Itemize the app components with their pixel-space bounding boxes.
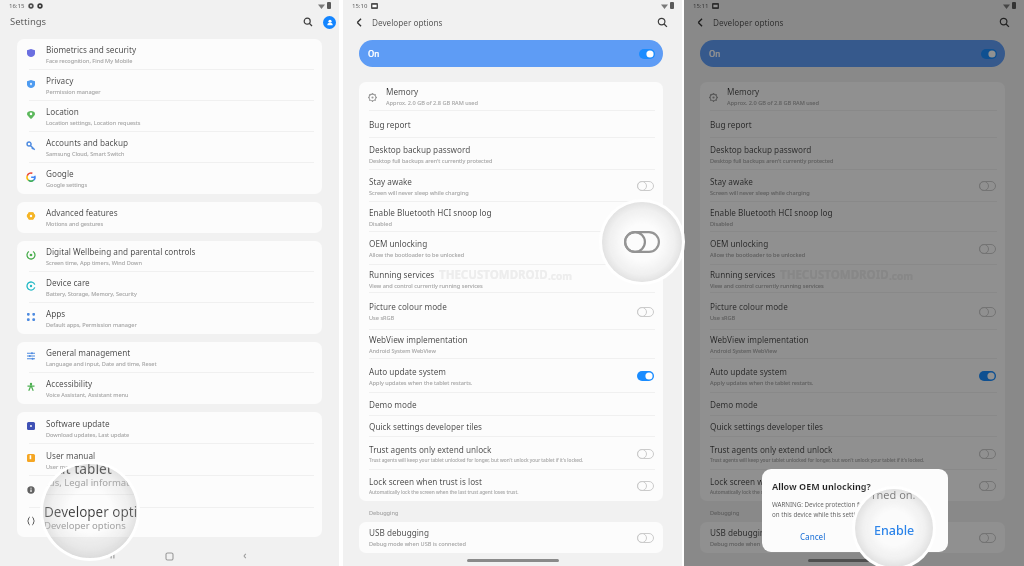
staticText: Desktop full backups aren't currently pr… [710,157,834,165]
staticText: OEM unlocking [369,238,428,249]
button[interactable]: Search [301,15,315,29]
button[interactable]: Lock screen when trust is lost [359,470,663,501]
button[interactable]: Bug report [359,111,663,138]
button[interactable]: On [359,40,663,67]
staticText: Apply updates when the tablet restarts. [710,379,814,387]
button[interactable]: Toggle off [979,307,996,317]
button[interactable]: On [700,40,1005,67]
staticText: Android System WebView [710,347,777,355]
button[interactable]: Running services [359,265,663,293]
button[interactable]: Bug report [700,111,1005,138]
button[interactable]: Demo mode [359,393,663,416]
button[interactable]: Picture colour mode [359,293,663,330]
button[interactable]: Toggle on [979,371,996,381]
button[interactable]: Device care [17,272,322,303]
staticText: Enable Bluetooth HCI snoop log [710,207,833,218]
button[interactable]: Account [321,14,337,30]
staticText: Advanced features [46,207,118,218]
button[interactable]: Memory [700,82,1005,111]
staticText: Use sRGB [369,314,395,322]
button[interactable]: Stay awake [700,170,1005,202]
button[interactable]: Toggle off [637,307,654,317]
button[interactable]: Desktop backup password [700,138,1005,170]
button[interactable]: Back [352,15,367,30]
button[interactable]: Developer options [17,508,322,537]
button[interactable]: USB debugging [700,522,1005,553]
button[interactable]: Search [997,15,1012,30]
staticText: Download updates, Last update [46,431,130,439]
staticText: Developer options [713,17,784,28]
button[interactable]: Enable Bluetooth HCI snoop log [359,202,663,232]
staticText: Demo mode [710,399,758,410]
button[interactable]: Lock screen when trust is lost [700,470,1005,501]
button[interactable]: Toggle on [981,49,997,59]
button[interactable]: Accounts and backup [17,132,322,163]
button[interactable]: Quick settings developer tiles [359,416,663,437]
button[interactable]: Running services [700,265,1005,293]
button[interactable]: Auto update system [359,359,663,393]
staticText: Screen will never sleep while charging [369,189,469,197]
button[interactable]: WebView implementation [700,330,1005,359]
button[interactable]: Toggle off [637,181,654,191]
button[interactable]: Toggle off [979,533,996,543]
button[interactable]: Biometrics and security [17,39,322,70]
button[interactable]: Memory [359,82,663,111]
button[interactable]: Toggle off [979,481,996,491]
button[interactable]: Toggle off [979,244,996,254]
button[interactable]: Stay awake [359,170,663,202]
button[interactable]: Toggle off [637,449,654,459]
staticText: Accessibility [46,378,93,389]
button[interactable]: Picture colour mode [700,293,1005,330]
button[interactable]: Desktop backup password [359,138,663,170]
button[interactable]: Toggle off [979,449,996,459]
button[interactable]: WebView implementation [359,330,663,359]
staticText: Lock screen when trust is lost [369,476,482,487]
button[interactable]: Advanced features [17,202,322,233]
button[interactable]: OEM unlocking [700,232,1005,265]
staticText: ut tablet [57,464,137,478]
button[interactable]: Quick settings developer tiles [700,416,1005,437]
button[interactable]: OEM unlocking [359,232,663,265]
staticText: Disabled [369,220,392,228]
button[interactable]: Digital Wellbeing and parental controls [17,241,322,272]
button[interactable]: Apps [17,303,322,334]
button[interactable]: User manual [17,444,322,476]
button[interactable]: About tablet [17,476,322,508]
button[interactable]: Search [655,15,670,30]
button[interactable]: General management [17,342,322,373]
button[interactable]: Toggle on [637,371,654,381]
staticText: USB debugging [710,527,770,538]
button[interactable]: Toggle on [639,49,655,59]
button[interactable]: Recents [100,544,124,566]
button[interactable]: Toggle off [637,533,654,543]
button[interactable]: Auto update system [700,359,1005,393]
staticText: Screen time, App timers, Wind Down [46,259,142,267]
button[interactable]: Software update [17,412,322,444]
button[interactable]: Toggle off [624,231,660,253]
staticText: Motions and gestures [46,220,104,228]
button[interactable]: Toggle off [979,181,996,191]
staticText: Google [46,168,74,179]
button[interactable]: Trust agents only extend unlock [359,437,663,470]
button[interactable]: Cancel [792,528,834,545]
button[interactable]: Demo mode [700,393,1005,416]
button[interactable]: Privacy [17,70,322,101]
button[interactable]: Toggle off [637,244,654,254]
button[interactable]: USB debugging [359,522,663,553]
button[interactable]: Accessibility [17,373,322,404]
staticText: Apply updates when the tablet restarts. [369,379,473,387]
staticText: Default apps, Permission manager [46,321,137,329]
button[interactable]: Back [693,15,708,30]
button[interactable]: Enable [872,528,914,545]
staticText: Cancel [800,531,826,542]
button[interactable]: Enable Bluetooth HCI snoop log [700,202,1005,232]
button[interactable]: Location [17,101,322,132]
button[interactable]: Back [233,544,257,566]
staticText: WARNING: Device protection features will… [772,500,920,508]
staticText: Approx. 2.0 GB of 2.8 GB RAM used [727,99,819,107]
button[interactable]: Toggle off [637,481,654,491]
button[interactable]: Google [17,163,322,194]
button[interactable]: Home [157,544,181,566]
staticText: Android System WebView [369,347,436,355]
button[interactable]: Trust agents only extend unlock [700,437,1005,470]
